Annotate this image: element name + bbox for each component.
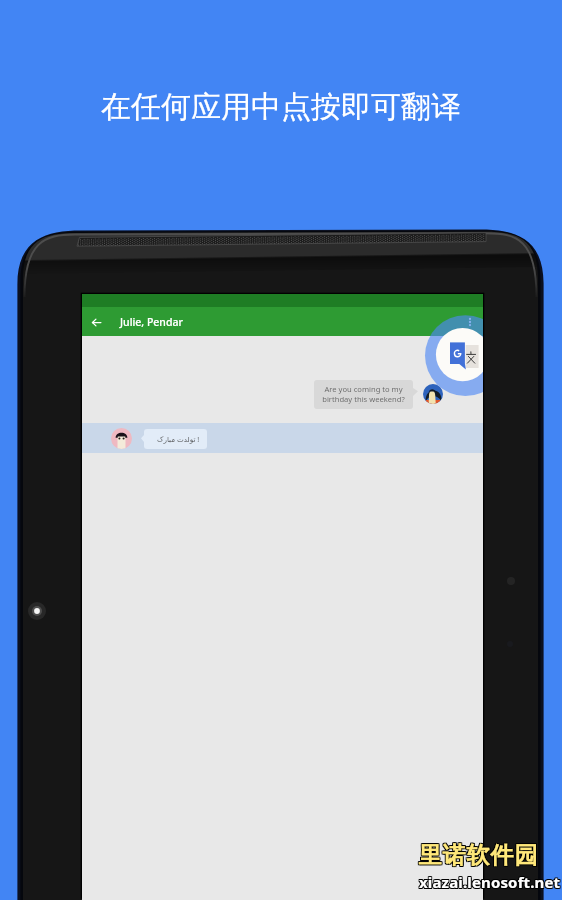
staticText: xiazai.lenosoft.net	[420, 873, 562, 893]
staticText: 在任何应用中点按即可翻译	[0, 88, 562, 126]
staticText: xiazai.lenosoft.net	[418, 872, 560, 892]
staticText: xiazai.lenosoft.net	[419, 872, 561, 892]
staticText: Are you coming to my birthday this weeke…	[322, 384, 405, 405]
staticText: xiazai.lenosoft.net	[420, 871, 562, 891]
staticText: 里诺软件园	[417, 841, 537, 870]
button[interactable]: Tap to translate	[382, 294, 483, 419]
button[interactable]: More options	[457, 309, 483, 335]
staticText: 里诺软件园	[419, 841, 539, 870]
staticText: xiazai.lenosoft.net	[418, 873, 560, 893]
button[interactable]: تولدت مبارک !	[82, 423, 483, 453]
staticText: xiazai.lenosoft.net	[419, 871, 561, 891]
staticText: 里诺软件园	[418, 841, 538, 870]
staticText: 里诺软件园	[418, 840, 538, 869]
staticText: xiazai.lenosoft.net	[419, 873, 561, 893]
staticText: 里诺软件园	[417, 842, 537, 871]
staticText: 里诺软件园	[417, 840, 537, 869]
staticText: 里诺软件园	[419, 840, 539, 869]
staticText: xiazai.lenosoft.net	[418, 871, 560, 891]
button[interactable]: Are you coming to my birthday this weeke…	[314, 380, 413, 409]
staticText: تولدت مبارک !	[157, 434, 200, 444]
button[interactable]: Back	[82, 308, 110, 336]
staticText: 里诺软件园	[418, 842, 538, 871]
staticText: 里诺软件园	[419, 842, 539, 871]
staticText: Julie, Pendar	[120, 315, 183, 329]
staticText: xiazai.lenosoft.net	[420, 872, 562, 892]
